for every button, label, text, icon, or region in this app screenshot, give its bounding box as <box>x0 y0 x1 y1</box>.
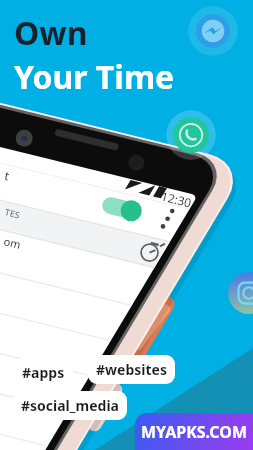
staticText: Own <box>14 11 88 55</box>
staticText: MYAPKS.COM <box>141 421 247 443</box>
button[interactable]: #websites <box>88 355 175 384</box>
button[interactable]: #social_media <box>13 391 127 420</box>
staticText: Your Time <box>14 55 175 99</box>
button[interactable]: #apps <box>14 358 73 387</box>
staticText: #websites <box>96 360 167 379</box>
staticText: TES <box>4 205 22 221</box>
staticText: 12:30 <box>159 188 193 211</box>
button[interactable]: Messenger <box>188 6 238 56</box>
staticText: om <box>2 233 22 252</box>
button[interactable]: MYAPKS.COM <box>135 413 253 450</box>
staticText: #social_media <box>21 396 119 415</box>
staticText: #apps <box>22 363 65 382</box>
button[interactable]: WhatsApp <box>166 110 216 160</box>
button[interactable]: Instagram <box>224 268 253 318</box>
staticText: t <box>3 167 12 183</box>
